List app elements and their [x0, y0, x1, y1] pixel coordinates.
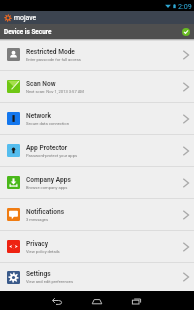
staticText: Network: [26, 112, 51, 120]
button[interactable]: Privacy: [0, 231, 194, 262]
button[interactable]: Company Apps: [0, 167, 194, 198]
staticText: View and edit preferences: [26, 279, 74, 284]
staticText: Enter passcode for full access: [26, 57, 81, 62]
staticText: Device is Secure: [4, 28, 52, 36]
button[interactable]: Notifications: [0, 199, 194, 230]
staticText: App Protector: [26, 144, 68, 152]
staticText: Company Apps: [26, 176, 71, 184]
staticText: Browse company apps: [26, 185, 68, 190]
staticText: 3 messages: [26, 217, 49, 222]
button[interactable]: Settings: [0, 263, 194, 291]
button[interactable]: Home: [87, 291, 107, 310]
button[interactable]: Restricted Mode: [0, 39, 194, 70]
button[interactable]: mojave: [0, 11, 194, 24]
staticText: mojave: [14, 14, 37, 22]
staticText: Secure data connection: [26, 121, 69, 126]
staticText: Scan Now: [26, 80, 56, 88]
staticText: Restricted Mode: [26, 48, 75, 56]
staticText: Settings: [26, 270, 51, 278]
staticText: Next scan: Nov 1, 2013 3:57 AM: [26, 89, 84, 94]
staticText: 2:09: [178, 2, 192, 10]
staticText: Privacy: [26, 240, 48, 248]
button[interactable]: Scan Now: [0, 71, 194, 102]
button[interactable]: App Protector: [0, 135, 194, 166]
staticText: Password-protect your apps: [26, 153, 78, 158]
button[interactable]: Back: [47, 291, 67, 310]
button[interactable]: Network: [0, 103, 194, 134]
staticText: View policy details: [26, 249, 60, 254]
staticText: Notifications: [26, 208, 65, 216]
button[interactable]: Recent apps: [127, 291, 147, 310]
